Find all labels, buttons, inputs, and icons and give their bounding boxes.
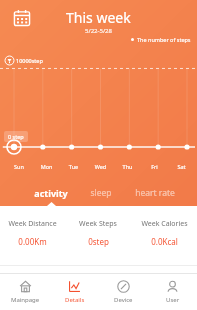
staticText: User — [166, 296, 180, 304]
staticText: Thu — [114, 163, 141, 170]
staticText: heart rate — [135, 187, 175, 199]
button[interactable]: Calendar — [13, 9, 31, 27]
staticText: 10000step — [16, 57, 43, 64]
staticText: Mon — [33, 163, 60, 170]
button[interactable]: Week Calories — [131, 219, 197, 247]
staticText: Week Distance — [8, 219, 57, 229]
staticText: Week Calories — [141, 219, 188, 229]
staticText: 0step — [88, 236, 109, 247]
staticText: Tue — [60, 163, 87, 170]
staticText: Week Steps — [79, 219, 117, 229]
staticText: Mainpage — [11, 296, 40, 304]
staticText: 0.0Kcal — [151, 236, 178, 247]
staticText: 0.00Km — [18, 236, 47, 247]
button[interactable]: sleep — [76, 180, 126, 206]
staticText: Sun — [5, 163, 33, 170]
staticText: sleep — [90, 187, 112, 199]
button[interactable]: Details — [50, 274, 99, 310]
button[interactable]: Device — [99, 274, 148, 310]
button[interactable]: User — [148, 274, 197, 310]
staticText: Sat — [168, 163, 195, 170]
button[interactable]: Week Distance — [0, 219, 65, 247]
staticText: activity — [34, 187, 68, 199]
staticText: Wed — [87, 163, 114, 170]
staticText: This week — [66, 8, 131, 27]
staticText: 0 step — [8, 133, 24, 140]
staticText: The number of steps — [137, 36, 191, 43]
button[interactable]: activity — [26, 180, 76, 206]
button[interactable]: Mainpage — [0, 274, 50, 310]
staticText: Details — [65, 296, 85, 304]
staticText: Device — [114, 296, 133, 304]
staticText: Fri — [141, 163, 168, 170]
button[interactable]: Week Steps — [65, 219, 131, 247]
button[interactable]: heart rate — [126, 180, 183, 206]
staticText: 5/22-5/28 — [85, 27, 112, 35]
